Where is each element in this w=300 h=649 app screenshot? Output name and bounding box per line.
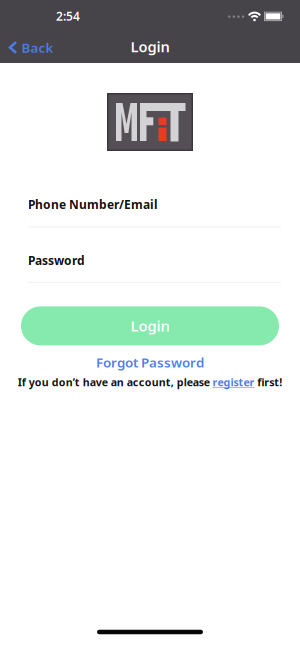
staticText: Login — [130, 316, 169, 336]
staticText: Phone Number/Email — [28, 196, 158, 212]
staticText: register — [212, 375, 254, 389]
staticText: Login — [130, 37, 169, 56]
staticText: first! — [257, 375, 282, 389]
button[interactable]: register — [212, 375, 254, 389]
staticText: If you don’t have an account, please — [18, 375, 210, 389]
staticText: Back — [21, 39, 53, 56]
button[interactable]: Back — [8, 39, 53, 56]
button[interactable]: Login — [21, 306, 279, 345]
staticText: Password — [28, 252, 85, 268]
button[interactable]: Forgot Password — [96, 353, 204, 371]
staticText: 2:54 — [56, 8, 80, 24]
staticText: Forgot Password — [96, 353, 204, 371]
